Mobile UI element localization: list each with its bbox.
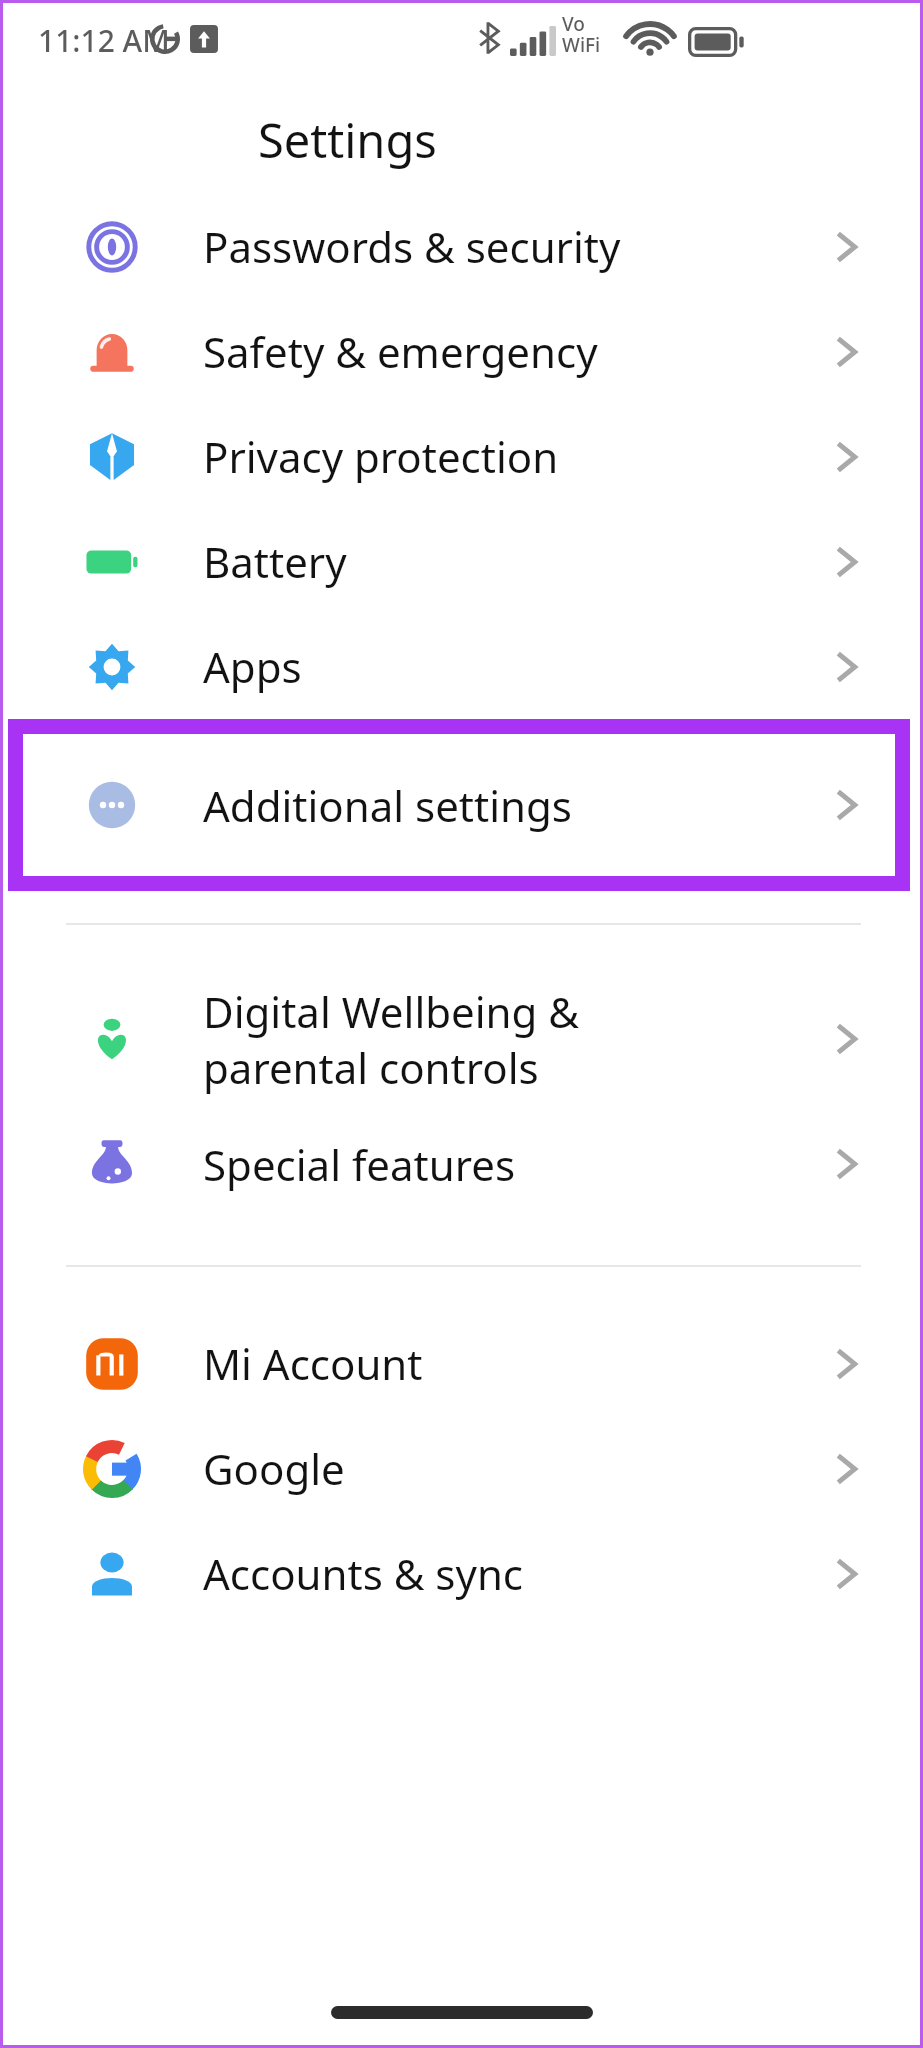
other: Special features <box>83 1135 141 1193</box>
other: Passwords & security <box>83 218 141 276</box>
staticText: Digital Wellbeing & parental controls <box>203 983 580 1096</box>
staticText: Safety & emergency <box>203 323 598 380</box>
button[interactable]: Battery <box>0 509 923 614</box>
other: Battery <box>83 533 141 591</box>
button[interactable]: Mi Account <box>0 1311 923 1416</box>
staticText: Settings <box>258 108 437 172</box>
other: Safety & emergency <box>83 323 141 381</box>
other: Accounts & sync <box>83 1545 141 1603</box>
other: Privacy protection <box>83 428 141 486</box>
staticText: Google <box>203 1440 345 1497</box>
staticText: Battery <box>203 533 347 590</box>
other: Apps <box>83 638 141 696</box>
other: Google <box>83 1440 141 1498</box>
other: Mi Account <box>83 1335 141 1393</box>
button[interactable]: Accounts & sync <box>0 1521 923 1626</box>
other: Additional settings <box>83 776 141 834</box>
staticText: Accounts & sync <box>203 1545 523 1602</box>
staticText: Passwords & security <box>203 218 621 275</box>
staticText: Additional settings <box>203 777 572 834</box>
staticText: Vo <box>562 11 585 37</box>
staticText: Apps <box>203 638 302 695</box>
button[interactable]: Privacy protection <box>0 404 923 509</box>
staticText: Mi Account <box>203 1335 423 1392</box>
staticText: Special features <box>203 1136 516 1193</box>
button[interactable]: Additional settings <box>23 734 895 876</box>
other: Digital Wellbeing & parental controls <box>83 1010 141 1068</box>
staticText: 11:12 AM <box>38 20 170 61</box>
button[interactable]: Digital Wellbeing & parental controls <box>0 969 923 1109</box>
staticText: WiFi <box>562 32 601 58</box>
button[interactable]: Passwords & security <box>0 194 923 299</box>
staticText: Privacy protection <box>203 428 559 485</box>
button[interactable]: Safety & emergency <box>0 299 923 404</box>
button[interactable]: Special features <box>0 1109 923 1219</box>
button[interactable]: Google <box>0 1416 923 1521</box>
button[interactable]: Apps <box>0 614 923 719</box>
